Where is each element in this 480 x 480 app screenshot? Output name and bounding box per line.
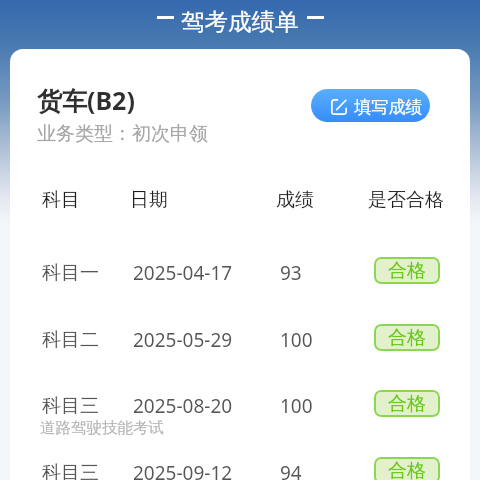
staticText: 2025-05-29 [133, 327, 233, 353]
staticText: 货车(B2) [37, 83, 135, 117]
staticText: 科目三 [42, 461, 99, 480]
staticText: 93 [280, 260, 302, 286]
staticText: 成绩 [276, 188, 314, 212]
staticText: 驾考成绩单 [181, 7, 299, 37]
button[interactable]: 科目二 [10, 307, 470, 373]
button[interactable]: 合格 [374, 457, 440, 480]
staticText: 科目一 [42, 261, 99, 285]
staticText: 科目三 [42, 394, 99, 418]
staticText: 科目 [42, 188, 80, 212]
staticText: 道路驾驶技能考试 [40, 418, 164, 438]
staticText: 合格 [388, 326, 426, 350]
staticText: 填写成绩 [354, 96, 423, 118]
staticText: 合格 [388, 459, 426, 480]
button[interactable]: 合格 [374, 390, 440, 417]
staticText: 100 [280, 327, 313, 353]
staticText: 是否合格 [368, 188, 444, 212]
button[interactable]: 科目一 [10, 240, 470, 306]
staticText: 2025-08-20 [133, 393, 233, 419]
staticText: 2025-09-12 [133, 460, 233, 480]
staticText: 科目二 [42, 328, 99, 352]
staticText: 94 [280, 460, 302, 480]
staticText: 2025-04-17 [133, 260, 233, 286]
staticText: 日期 [130, 188, 168, 212]
button[interactable]: 合格 [374, 257, 440, 284]
button[interactable]: 填写成绩 [311, 89, 430, 122]
staticText: 合格 [388, 259, 426, 283]
staticText: 合格 [388, 392, 426, 416]
staticText: 100 [280, 393, 313, 419]
button[interactable]: 科目三 [10, 373, 470, 439]
button[interactable]: 合格 [374, 324, 440, 351]
staticText: 业务类型：初次申领 [37, 122, 208, 146]
button[interactable]: 科目三 [10, 440, 470, 480]
